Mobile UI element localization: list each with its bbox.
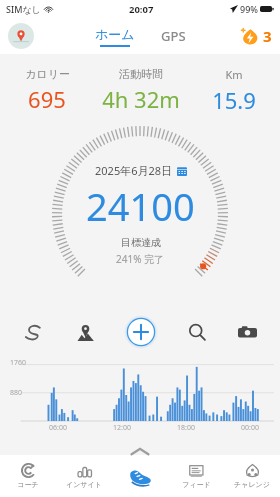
button[interactable]: インサイト bbox=[56, 455, 112, 497]
staticText: 3 bbox=[263, 26, 272, 46]
button[interactable]: Camera bbox=[232, 317, 262, 347]
button[interactable]: Km bbox=[187, 67, 280, 115]
staticText: 20:07 bbox=[129, 3, 154, 16]
button[interactable]: チャレンジ bbox=[224, 455, 280, 497]
staticText: 695 bbox=[28, 84, 66, 114]
other: Calendar bbox=[177, 166, 187, 176]
staticText: 06:00 bbox=[49, 423, 113, 433]
button[interactable]: 2025年6月28日 bbox=[95, 163, 187, 178]
button[interactable]: Streak bbox=[240, 26, 272, 46]
staticText: 880 bbox=[10, 388, 23, 398]
button[interactable]: 活動時間 bbox=[94, 67, 187, 114]
staticText: 99% bbox=[240, 3, 258, 15]
staticText: 12:00 bbox=[113, 423, 177, 433]
button[interactable]: Places bbox=[70, 317, 100, 347]
staticText: フィード bbox=[182, 480, 211, 489]
staticText: 1760 bbox=[10, 358, 27, 368]
staticText: チャレンジ bbox=[234, 480, 270, 489]
staticText: カロリー bbox=[25, 67, 70, 81]
staticText: 18:00 bbox=[177, 423, 241, 433]
button[interactable]: ホーム bbox=[89, 26, 141, 47]
staticText: インサイト bbox=[66, 480, 102, 489]
staticText: 目標達成 bbox=[121, 236, 161, 249]
staticText: 2025年6月28日 bbox=[95, 163, 173, 178]
button[interactable]: Activity bbox=[112, 455, 168, 497]
staticText: 241% 完了 bbox=[116, 252, 165, 266]
staticText: SIMなし bbox=[6, 3, 41, 15]
button[interactable]: Search bbox=[182, 317, 212, 347]
button[interactable]: カロリー bbox=[0, 67, 94, 114]
staticText: ホーム bbox=[95, 26, 135, 42]
button[interactable]: Route bbox=[18, 317, 48, 347]
staticText: Km bbox=[225, 67, 243, 82]
staticText: 4h 32m bbox=[102, 84, 180, 114]
button[interactable]: コーチ bbox=[0, 455, 56, 497]
button[interactable]: Add bbox=[124, 315, 158, 349]
staticText: コーチ bbox=[17, 480, 39, 489]
staticText: 15.9 bbox=[212, 85, 256, 115]
staticText: GPS bbox=[161, 27, 186, 45]
staticText: 00:00 bbox=[241, 423, 280, 433]
button[interactable]: フィード bbox=[168, 455, 224, 497]
staticText: 24100 bbox=[86, 180, 195, 232]
button[interactable]: GPS bbox=[155, 25, 192, 47]
staticText: 活動時間 bbox=[119, 67, 163, 81]
button[interactable]: Profile bbox=[8, 23, 34, 49]
